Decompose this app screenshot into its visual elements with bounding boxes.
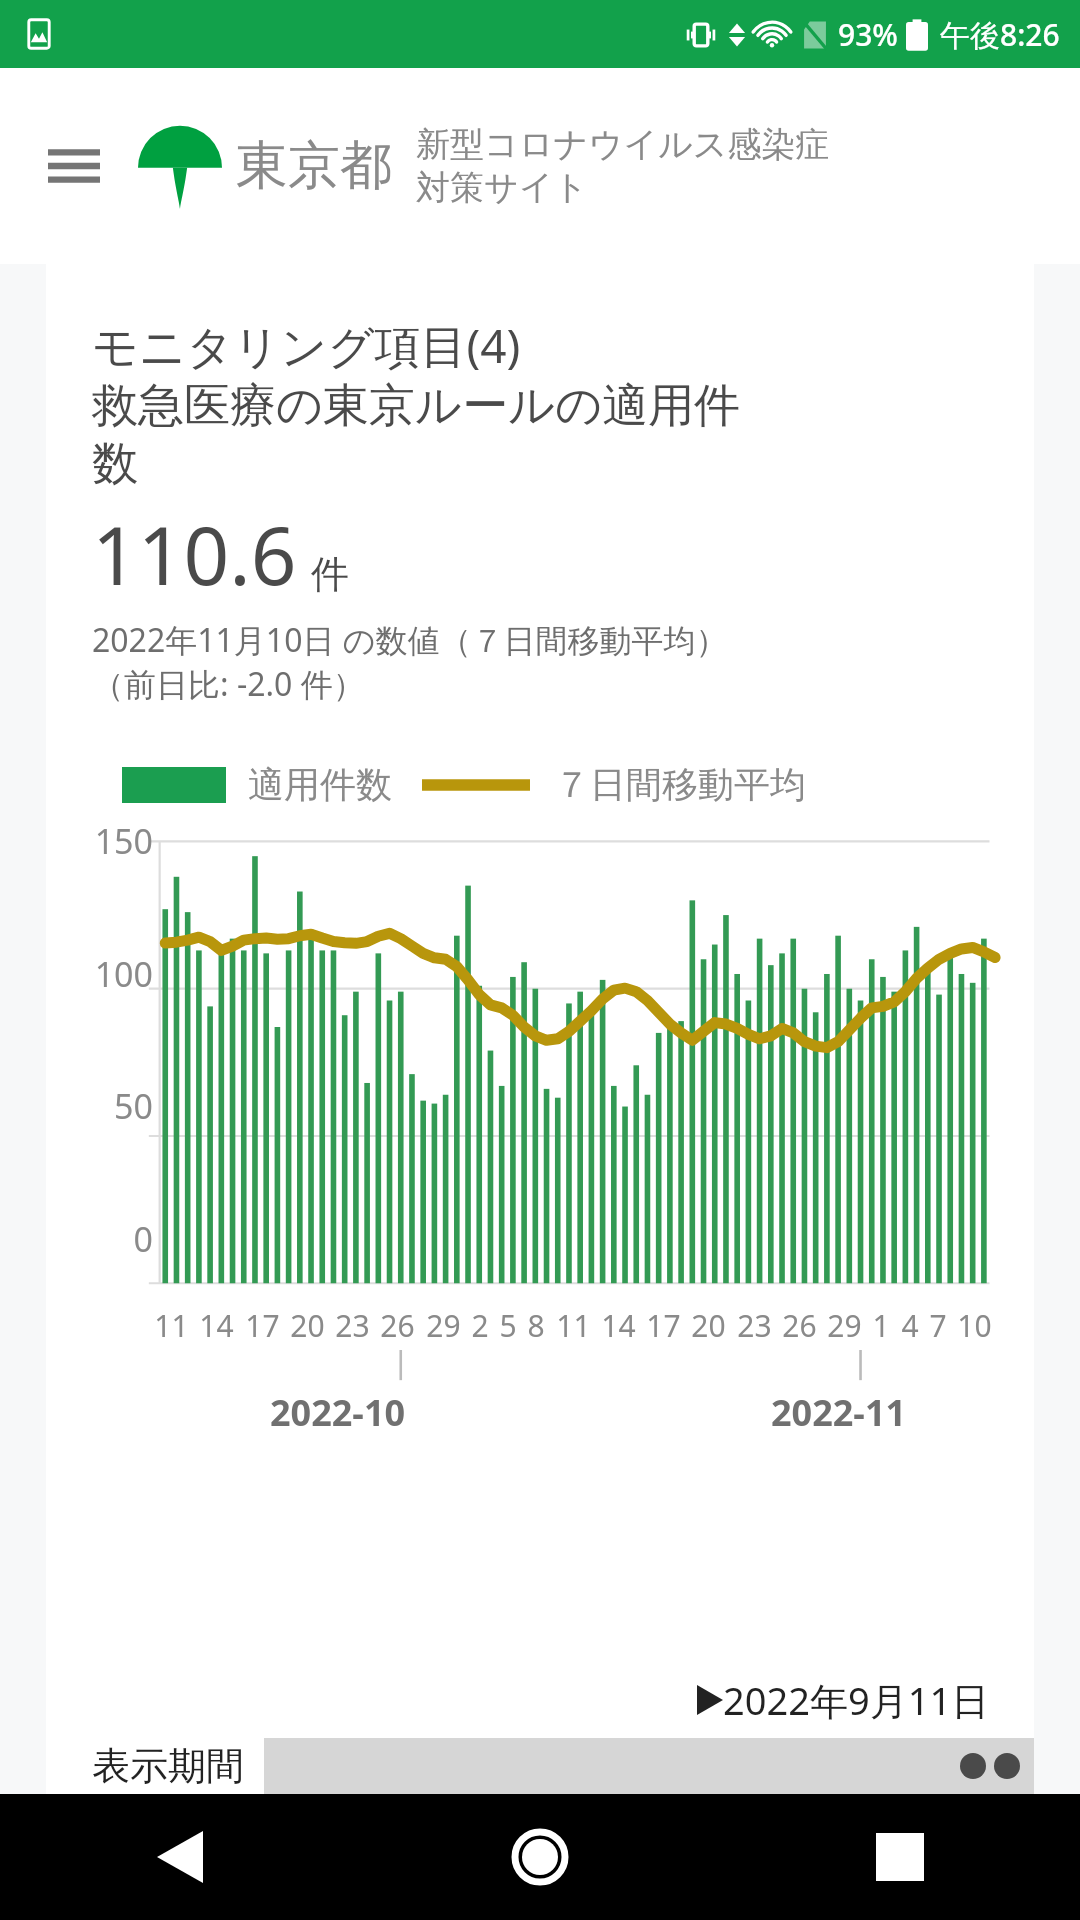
staticText: ７日間移動平均: [554, 762, 806, 807]
staticText: 20: [691, 1305, 726, 1346]
staticText: 4: [901, 1305, 919, 1346]
staticText: 1: [872, 1305, 890, 1346]
staticText: 2: [471, 1305, 489, 1346]
staticText: 150: [94, 818, 153, 864]
staticText: 数: [92, 435, 138, 493]
staticText: 20: [290, 1305, 325, 1346]
staticText: 件: [311, 550, 349, 598]
staticText: 26: [380, 1305, 415, 1346]
button[interactable]: Recent apps: [720, 1794, 1080, 1920]
staticText: モニタリング項目(4): [92, 314, 521, 377]
staticText: 14: [601, 1305, 636, 1346]
staticText: 11: [154, 1305, 189, 1346]
staticText: 93%: [838, 14, 898, 55]
staticText: 17: [245, 1305, 280, 1346]
staticText: 新型コロナウイルス感染症: [416, 123, 830, 166]
staticText: 23: [737, 1305, 772, 1346]
staticText: 東京都: [236, 133, 392, 199]
staticText: 14: [199, 1305, 234, 1346]
button[interactable]: Home: [360, 1794, 720, 1920]
staticText: 救急医療の東京ルールの適用件: [92, 377, 741, 435]
staticText: 29: [827, 1305, 862, 1346]
button[interactable]: Period slider: [264, 1738, 1034, 1794]
staticText: 10: [957, 1305, 992, 1346]
staticText: 29: [426, 1305, 461, 1346]
staticText: 2022年11月10日 の数値（７日間移動平均）: [92, 618, 728, 662]
staticText: 11: [556, 1305, 591, 1346]
staticText: 5: [499, 1305, 517, 1346]
staticText: 7: [929, 1305, 947, 1346]
staticText: 2022年9月11日: [723, 1674, 990, 1726]
staticText: 表示期間: [92, 1742, 244, 1790]
staticText: 17: [646, 1305, 681, 1346]
staticText: 8: [527, 1305, 545, 1346]
staticText: 適用件数: [248, 762, 392, 807]
staticText: 110.6: [92, 499, 297, 608]
staticText: 100: [94, 951, 153, 997]
button[interactable]: Back: [0, 1794, 360, 1920]
staticText: 26: [782, 1305, 817, 1346]
staticText: 2022-10: [270, 1388, 406, 1437]
staticText: 2022-11: [771, 1388, 907, 1437]
staticText: （前日比: -2.0 件）: [92, 662, 365, 706]
staticText: 0: [133, 1216, 153, 1262]
staticText: 対策サイト: [416, 166, 589, 209]
staticText: 50: [114, 1083, 153, 1129]
button[interactable]: Menu: [34, 126, 114, 206]
staticText: 23: [335, 1305, 370, 1346]
staticText: 午後8:26: [940, 14, 1060, 55]
